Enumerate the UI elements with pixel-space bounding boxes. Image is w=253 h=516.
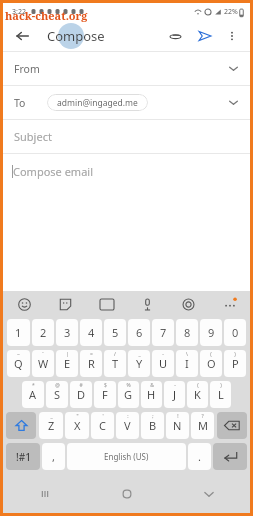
button[interactable]: 3 [56, 319, 78, 346]
button[interactable]: Voice input [127, 291, 168, 317]
staticText: 9 [208, 325, 215, 340]
staticText: A [29, 387, 37, 402]
button[interactable]: Compose email [3, 154, 250, 188]
button[interactable]: Send [194, 25, 216, 47]
button[interactable]: To [3, 86, 250, 119]
button[interactable]: Home [86, 475, 168, 513]
staticText: | [66, 351, 69, 358]
staticText: 2 [40, 325, 47, 340]
button[interactable]: , [42, 443, 65, 470]
button[interactable]: More options [222, 26, 242, 46]
staticText: _ [138, 351, 141, 358]
button[interactable]: Settings [168, 291, 209, 317]
staticText: V [124, 418, 131, 433]
button[interactable]: U [152, 350, 174, 377]
staticText: ( [197, 382, 199, 389]
button[interactable]: Q [7, 350, 30, 377]
button[interactable]: admin@ingaged.me [47, 94, 148, 111]
staticText: % [126, 382, 131, 389]
button[interactable]: H [141, 381, 162, 408]
button[interactable]: L [210, 381, 231, 408]
button[interactable]: 5 [104, 319, 126, 346]
button[interactable]: K [187, 381, 208, 408]
staticText: W [38, 356, 49, 371]
button[interactable]: V [116, 412, 139, 439]
staticText: : [127, 413, 129, 420]
button[interactable]: J [164, 381, 185, 408]
button[interactable]: S [46, 381, 68, 408]
button[interactable]: Shift [6, 412, 36, 439]
staticText: $ [104, 382, 107, 389]
button[interactable]: E [56, 350, 78, 377]
button[interactable]: GIF [86, 291, 127, 317]
staticText: \ [186, 351, 188, 358]
staticText: Compose email [13, 164, 93, 179]
button[interactable]: W [32, 350, 54, 377]
staticText: . [198, 449, 201, 464]
button[interactable]: 7 [152, 319, 174, 346]
button[interactable]: Emoji [3, 291, 45, 317]
button[interactable]: More [209, 291, 250, 317]
staticText: From [14, 62, 40, 76]
button[interactable]: Hide keyboard [168, 475, 250, 513]
staticText: E [64, 356, 71, 371]
button[interactable]: Back [11, 25, 33, 47]
staticText: hack-cheat.org [5, 8, 88, 23]
staticText: P [232, 356, 239, 371]
staticText: L [218, 387, 224, 402]
button[interactable]: Attach [164, 25, 186, 47]
button[interactable]: Enter [213, 443, 247, 470]
button[interactable]: B [141, 412, 164, 439]
button[interactable]: 0 [224, 319, 246, 346]
button[interactable]: 4 [80, 319, 102, 346]
staticText: & [150, 382, 154, 389]
button[interactable]: C [91, 412, 114, 439]
button[interactable]: Z [39, 412, 63, 439]
staticText: X [74, 418, 81, 433]
button[interactable]: Subject [3, 120, 250, 153]
staticText: ) [220, 382, 222, 389]
button[interactable]: D [70, 381, 92, 408]
button[interactable]: 8 [176, 319, 198, 346]
button[interactable]: 9 [200, 319, 222, 346]
staticText: ( [210, 351, 212, 358]
button[interactable]: Sticker [45, 291, 86, 317]
button[interactable]: O [200, 350, 222, 377]
staticText: K [194, 387, 201, 402]
staticText: I [185, 356, 189, 371]
staticText: !#1 [16, 450, 31, 464]
button[interactable]: R [80, 350, 102, 377]
button[interactable]: Recents [3, 475, 86, 513]
button[interactable]: A [22, 381, 44, 408]
button[interactable]: F [94, 381, 116, 408]
button[interactable]: . [188, 443, 211, 470]
button[interactable]: P [224, 350, 246, 377]
staticText: " [76, 413, 79, 420]
button[interactable]: 1 [7, 319, 30, 346]
button[interactable]: N [166, 412, 189, 439]
button[interactable]: Y [128, 350, 150, 377]
staticText: _ [50, 413, 53, 420]
button[interactable]: From [3, 52, 250, 85]
staticText: 3 [64, 325, 71, 340]
staticText: To [14, 96, 26, 110]
button[interactable]: 2 [32, 319, 54, 346]
button[interactable]: !#1 [6, 443, 40, 470]
staticText: 5 [112, 325, 119, 340]
button[interactable]: X [65, 412, 89, 439]
staticText: J [173, 387, 177, 402]
button[interactable]: 6 [128, 319, 150, 346]
staticText: 3:22 [12, 7, 26, 17]
button[interactable]: English (US) [67, 443, 186, 470]
staticText: R [88, 356, 95, 371]
staticText: T [112, 356, 119, 371]
staticText: English (US) [104, 451, 149, 462]
button[interactable]: M [191, 412, 214, 439]
staticText: S [54, 387, 61, 402]
button[interactable]: T [104, 350, 126, 377]
staticText: 22% [224, 7, 238, 17]
button[interactable]: G [118, 381, 139, 408]
button[interactable]: I [176, 350, 198, 377]
staticText: 6 [136, 325, 143, 340]
button[interactable]: Backspace [217, 412, 247, 439]
